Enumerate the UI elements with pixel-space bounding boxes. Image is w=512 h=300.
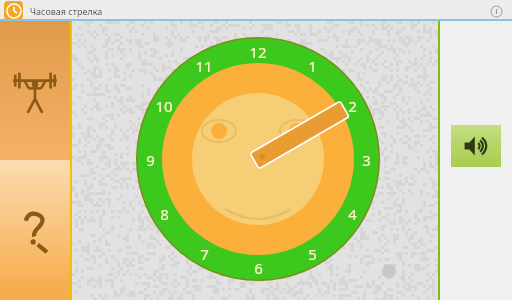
staticText: 3 [362,150,371,170]
staticText: 9 [146,150,155,170]
staticText: 7 [200,244,209,264]
staticText: 12 [249,42,267,62]
staticText: 2 [348,96,357,116]
staticText: 10 [155,96,173,116]
staticText: Часовая стрелка [30,5,103,17]
staticText: 5 [308,244,317,264]
button[interactable]: Info [488,3,504,19]
staticText: 6 [254,258,263,278]
button[interactable]: Help [0,160,70,300]
button[interactable]: Sound [451,125,501,167]
staticText: 1 [308,56,317,76]
button[interactable]: Exercise [0,21,70,160]
staticText: 4 [348,204,357,224]
staticText: 11 [195,56,213,76]
button[interactable]: App icon [4,1,23,20]
staticText: 8 [160,204,169,224]
